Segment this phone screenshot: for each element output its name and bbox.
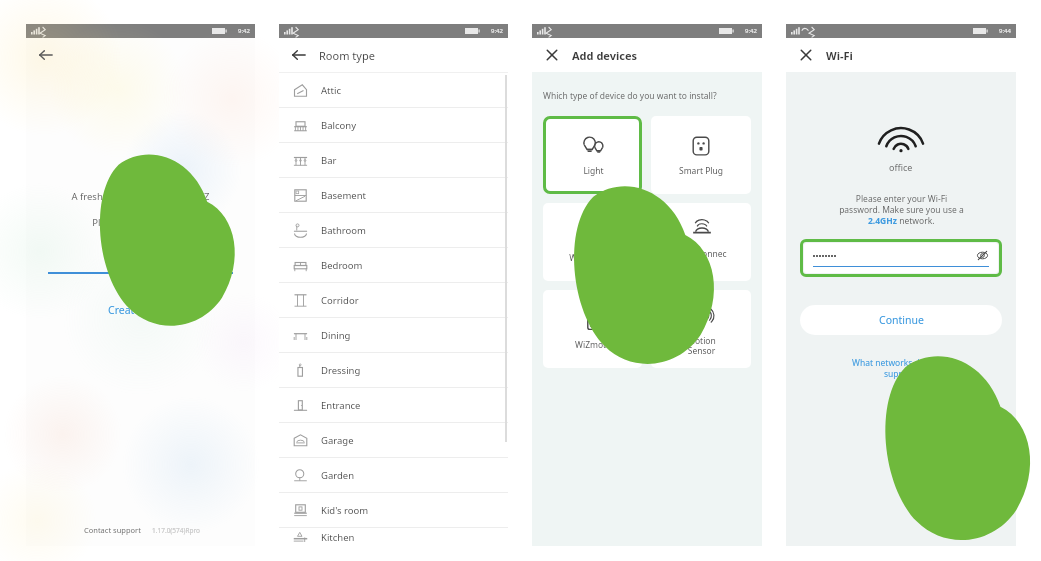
button[interactable]: Wi-Fi Switch (543, 203, 642, 281)
button[interactable]: Retroconnec tor (651, 203, 751, 281)
staticText: Continue (879, 313, 924, 327)
staticText: office (889, 161, 913, 173)
button[interactable]: WiZmote (543, 290, 642, 368)
button[interactable]: Show password (804, 243, 998, 273)
staticText: 9:42 (745, 27, 757, 35)
staticText: Light (583, 165, 604, 177)
staticText: Which type of device do you want to inst… (543, 90, 717, 102)
button[interactable]: Dressing (279, 353, 508, 387)
button[interactable]: Close (795, 44, 817, 66)
staticText: Bathroom (321, 224, 366, 237)
button[interactable]: Bar (279, 143, 508, 177)
button[interactable]: Contact support (82, 523, 143, 537)
staticText: Kitchen (321, 531, 355, 544)
button[interactable]: Back (288, 44, 310, 66)
button[interactable]: Basement (279, 178, 508, 212)
staticText: Entrance (321, 399, 361, 412)
button[interactable]: Continue (800, 305, 1002, 335)
staticText: Garage (321, 434, 354, 447)
staticText: WiZmote (575, 339, 611, 351)
staticText: network. (897, 215, 935, 227)
staticText: Contact support (84, 525, 141, 535)
staticText: Wi-Fi (826, 48, 853, 63)
staticText: 9:42 (491, 27, 503, 35)
button[interactable]: Kid's room (279, 493, 508, 527)
button[interactable]: Show password (976, 249, 989, 262)
button[interactable]: Attic (279, 73, 508, 107)
staticText: Create Home (108, 303, 173, 317)
staticText: Please enter your Wi-Fi password. Make s… (839, 193, 964, 215)
staticText: Corridor (321, 294, 359, 307)
staticText: 9:44 (999, 27, 1011, 35)
button[interactable]: Entrance (279, 388, 508, 422)
button[interactable]: Smart Plug (651, 116, 751, 194)
button[interactable]: Balcony (279, 108, 508, 142)
staticText: 2.4GHz (868, 215, 897, 227)
staticText: Dressing (321, 364, 361, 377)
staticText: Motion Sensor (687, 335, 716, 356)
staticText: Garden (321, 469, 355, 482)
button[interactable]: Close (541, 44, 563, 66)
button[interactable]: Garage (279, 423, 508, 457)
button[interactable]: Kitchen (279, 528, 508, 546)
staticText: A fresh new home for your WiZ devices. P… (71, 190, 210, 229)
staticText: Room type (319, 48, 375, 63)
staticText: Basement (321, 189, 366, 202)
staticText: 1.17.0(574)Rpro (152, 526, 200, 535)
button[interactable]: Create Home (98, 300, 183, 320)
staticText: Balcony (321, 119, 356, 132)
button[interactable]: What networks does WiZ support? (850, 355, 953, 381)
staticText: Dining (321, 329, 351, 342)
staticText: What networks does WiZ support? (852, 357, 951, 379)
button[interactable]: Motion Sensor (651, 290, 751, 368)
button[interactable]: Light (546, 119, 639, 191)
button[interactable]: Garden (279, 458, 508, 492)
staticText: Retroconnec tor (676, 248, 727, 269)
staticText: Attic (321, 84, 341, 97)
staticText: Wi-Fi Switch (569, 252, 617, 264)
button[interactable]: Bathroom (279, 213, 508, 247)
staticText: 9:42 (238, 27, 250, 35)
button[interactable]: Bedroom (279, 248, 508, 282)
staticText: Bar (321, 154, 337, 167)
button[interactable]: Dining (279, 318, 508, 352)
staticText: Smart Plug (679, 165, 723, 177)
staticText: Bedroom (321, 259, 363, 272)
button[interactable]: Corridor (279, 283, 508, 317)
staticText: Add devices (572, 48, 638, 63)
button[interactable]: Back (35, 44, 57, 66)
staticText: Kid's room (321, 504, 369, 517)
